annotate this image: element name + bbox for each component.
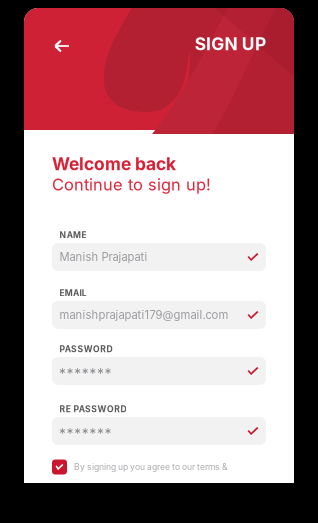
staticText: EMAIL xyxy=(59,288,87,298)
staticText: RE PASSWORD xyxy=(59,404,126,414)
staticText: By signing up you agree to our terms & xyxy=(74,462,227,472)
button[interactable]: By signing up you agree to our terms & xyxy=(52,459,266,475)
staticText: manishprajapati179@gmail.com xyxy=(59,308,228,322)
button[interactable]: Back xyxy=(48,33,76,59)
button[interactable]: SIGN UP xyxy=(156,31,266,57)
staticText: PASSWORD xyxy=(59,344,113,354)
staticText: SIGN UP xyxy=(195,33,266,54)
staticText: Continue to sign up! xyxy=(52,174,211,194)
staticText: Manish Prajapati xyxy=(59,250,147,264)
staticText: NAME xyxy=(59,230,86,240)
staticText: Welcome back xyxy=(52,153,176,174)
